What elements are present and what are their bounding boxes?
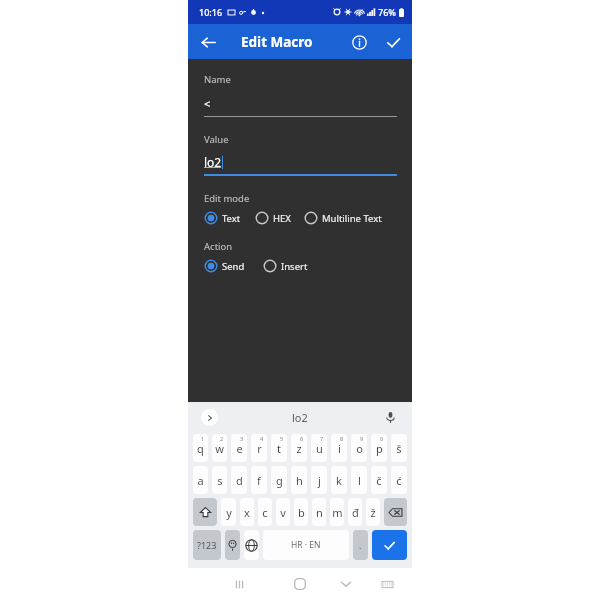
button[interactable]: g [271,466,287,494]
staticText: 2 [220,435,224,442]
button[interactable]: Recents [226,571,252,597]
button[interactable]: Switch keyboard [374,571,400,597]
staticText: 4 [260,435,264,442]
staticText: 76% [378,6,396,18]
staticText: s [217,473,223,488]
button[interactable]: Multiline Text [304,209,382,227]
staticText: o [356,441,363,456]
button[interactable]: i [331,434,347,462]
button[interactable]: č [371,466,387,494]
button[interactable]: j [311,466,327,494]
button[interactable]: y [221,498,236,526]
staticText: đ [352,505,359,520]
button[interactable]: x [240,498,254,526]
button[interactable]: Hide keyboard [333,571,359,597]
staticText: HR · EN [291,539,321,551]
button[interactable]: ž [366,498,380,526]
staticText: h [296,473,303,488]
staticText: n [316,505,323,520]
button[interactable]: u [311,434,327,462]
staticText: k [336,473,342,488]
button[interactable]: Insert [263,257,308,275]
staticText: y [226,505,232,520]
button[interactable]: z [291,434,307,462]
staticText: š [396,441,402,456]
button[interactable]: p [371,434,387,462]
button[interactable]: HEX [255,209,291,227]
staticText: Action [204,240,233,253]
staticText: ?123 [197,539,217,551]
button[interactable]: l [351,466,367,494]
staticText: HEX [273,212,291,225]
button[interactable]: Emoji [225,530,240,560]
button[interactable]: Info [346,29,372,55]
button[interactable]: w [212,434,227,462]
button[interactable]: . [353,530,368,560]
staticText: ž [370,505,376,520]
staticText: . [359,539,362,551]
button[interactable]: Home [287,571,313,597]
staticText: Value [204,133,229,146]
staticText: 5 [280,435,284,442]
button[interactable]: Voice input [381,408,399,426]
button[interactable]: Text [204,209,241,227]
staticText: j [318,473,321,488]
staticText: t [277,441,281,456]
staticText: i [338,441,341,456]
button[interactable]: Expand toolbar [201,409,218,426]
button[interactable]: < [204,96,397,111]
button[interactable]: s [212,466,227,494]
button[interactable]: b [294,498,308,526]
staticText: g [276,473,283,488]
button[interactable]: Backspace [384,498,407,526]
button[interactable]: HR · EN [263,530,349,560]
staticText: 9 [360,435,364,442]
button[interactable]: e [231,434,247,462]
button[interactable]: Send [204,257,245,275]
button[interactable]: h [291,466,307,494]
button[interactable]: Back [194,28,222,56]
button[interactable]: t [271,434,287,462]
button[interactable]: Change language [244,530,259,560]
staticText: 0 [380,435,384,442]
button[interactable]: n [312,498,326,526]
button[interactable]: a [193,466,208,494]
staticText: 8 [340,435,344,442]
staticText: 7 [320,435,324,442]
staticText: b [298,505,305,520]
staticText: Insert [281,260,308,273]
staticText: c [262,505,268,520]
button[interactable]: d [231,466,247,494]
staticText: ć [396,473,402,488]
button[interactable]: m [330,498,344,526]
button[interactable]: Shift [193,498,217,526]
staticText: Text [222,212,241,225]
button[interactable]: c [258,498,272,526]
staticText: 10:16 [199,6,223,18]
staticText: Name [204,73,231,86]
button[interactable]: Save [380,29,406,55]
staticText: u [316,441,323,456]
staticText: l [358,473,361,488]
button[interactable]: o [351,434,367,462]
button[interactable]: đ [348,498,362,526]
button[interactable]: f [251,466,267,494]
staticText: < [204,96,211,111]
button[interactable]: r [251,434,267,462]
staticText: Send [222,260,245,273]
button[interactable]: ?123 [193,530,221,560]
button[interactable]: ć [391,466,407,494]
button[interactable]: k [331,466,347,494]
button[interactable]: š [391,434,407,462]
staticText: Edit mode [204,192,250,205]
button[interactable]: lo2 [204,154,397,170]
button[interactable]: q [193,434,208,462]
button[interactable]: v [276,498,290,526]
staticText: m [332,505,343,520]
staticText: 3 [240,435,244,442]
staticText: p [376,441,383,456]
staticText: f [257,473,261,488]
staticText: z [296,441,302,456]
staticText: e [236,441,243,456]
button[interactable]: Enter [372,530,407,560]
